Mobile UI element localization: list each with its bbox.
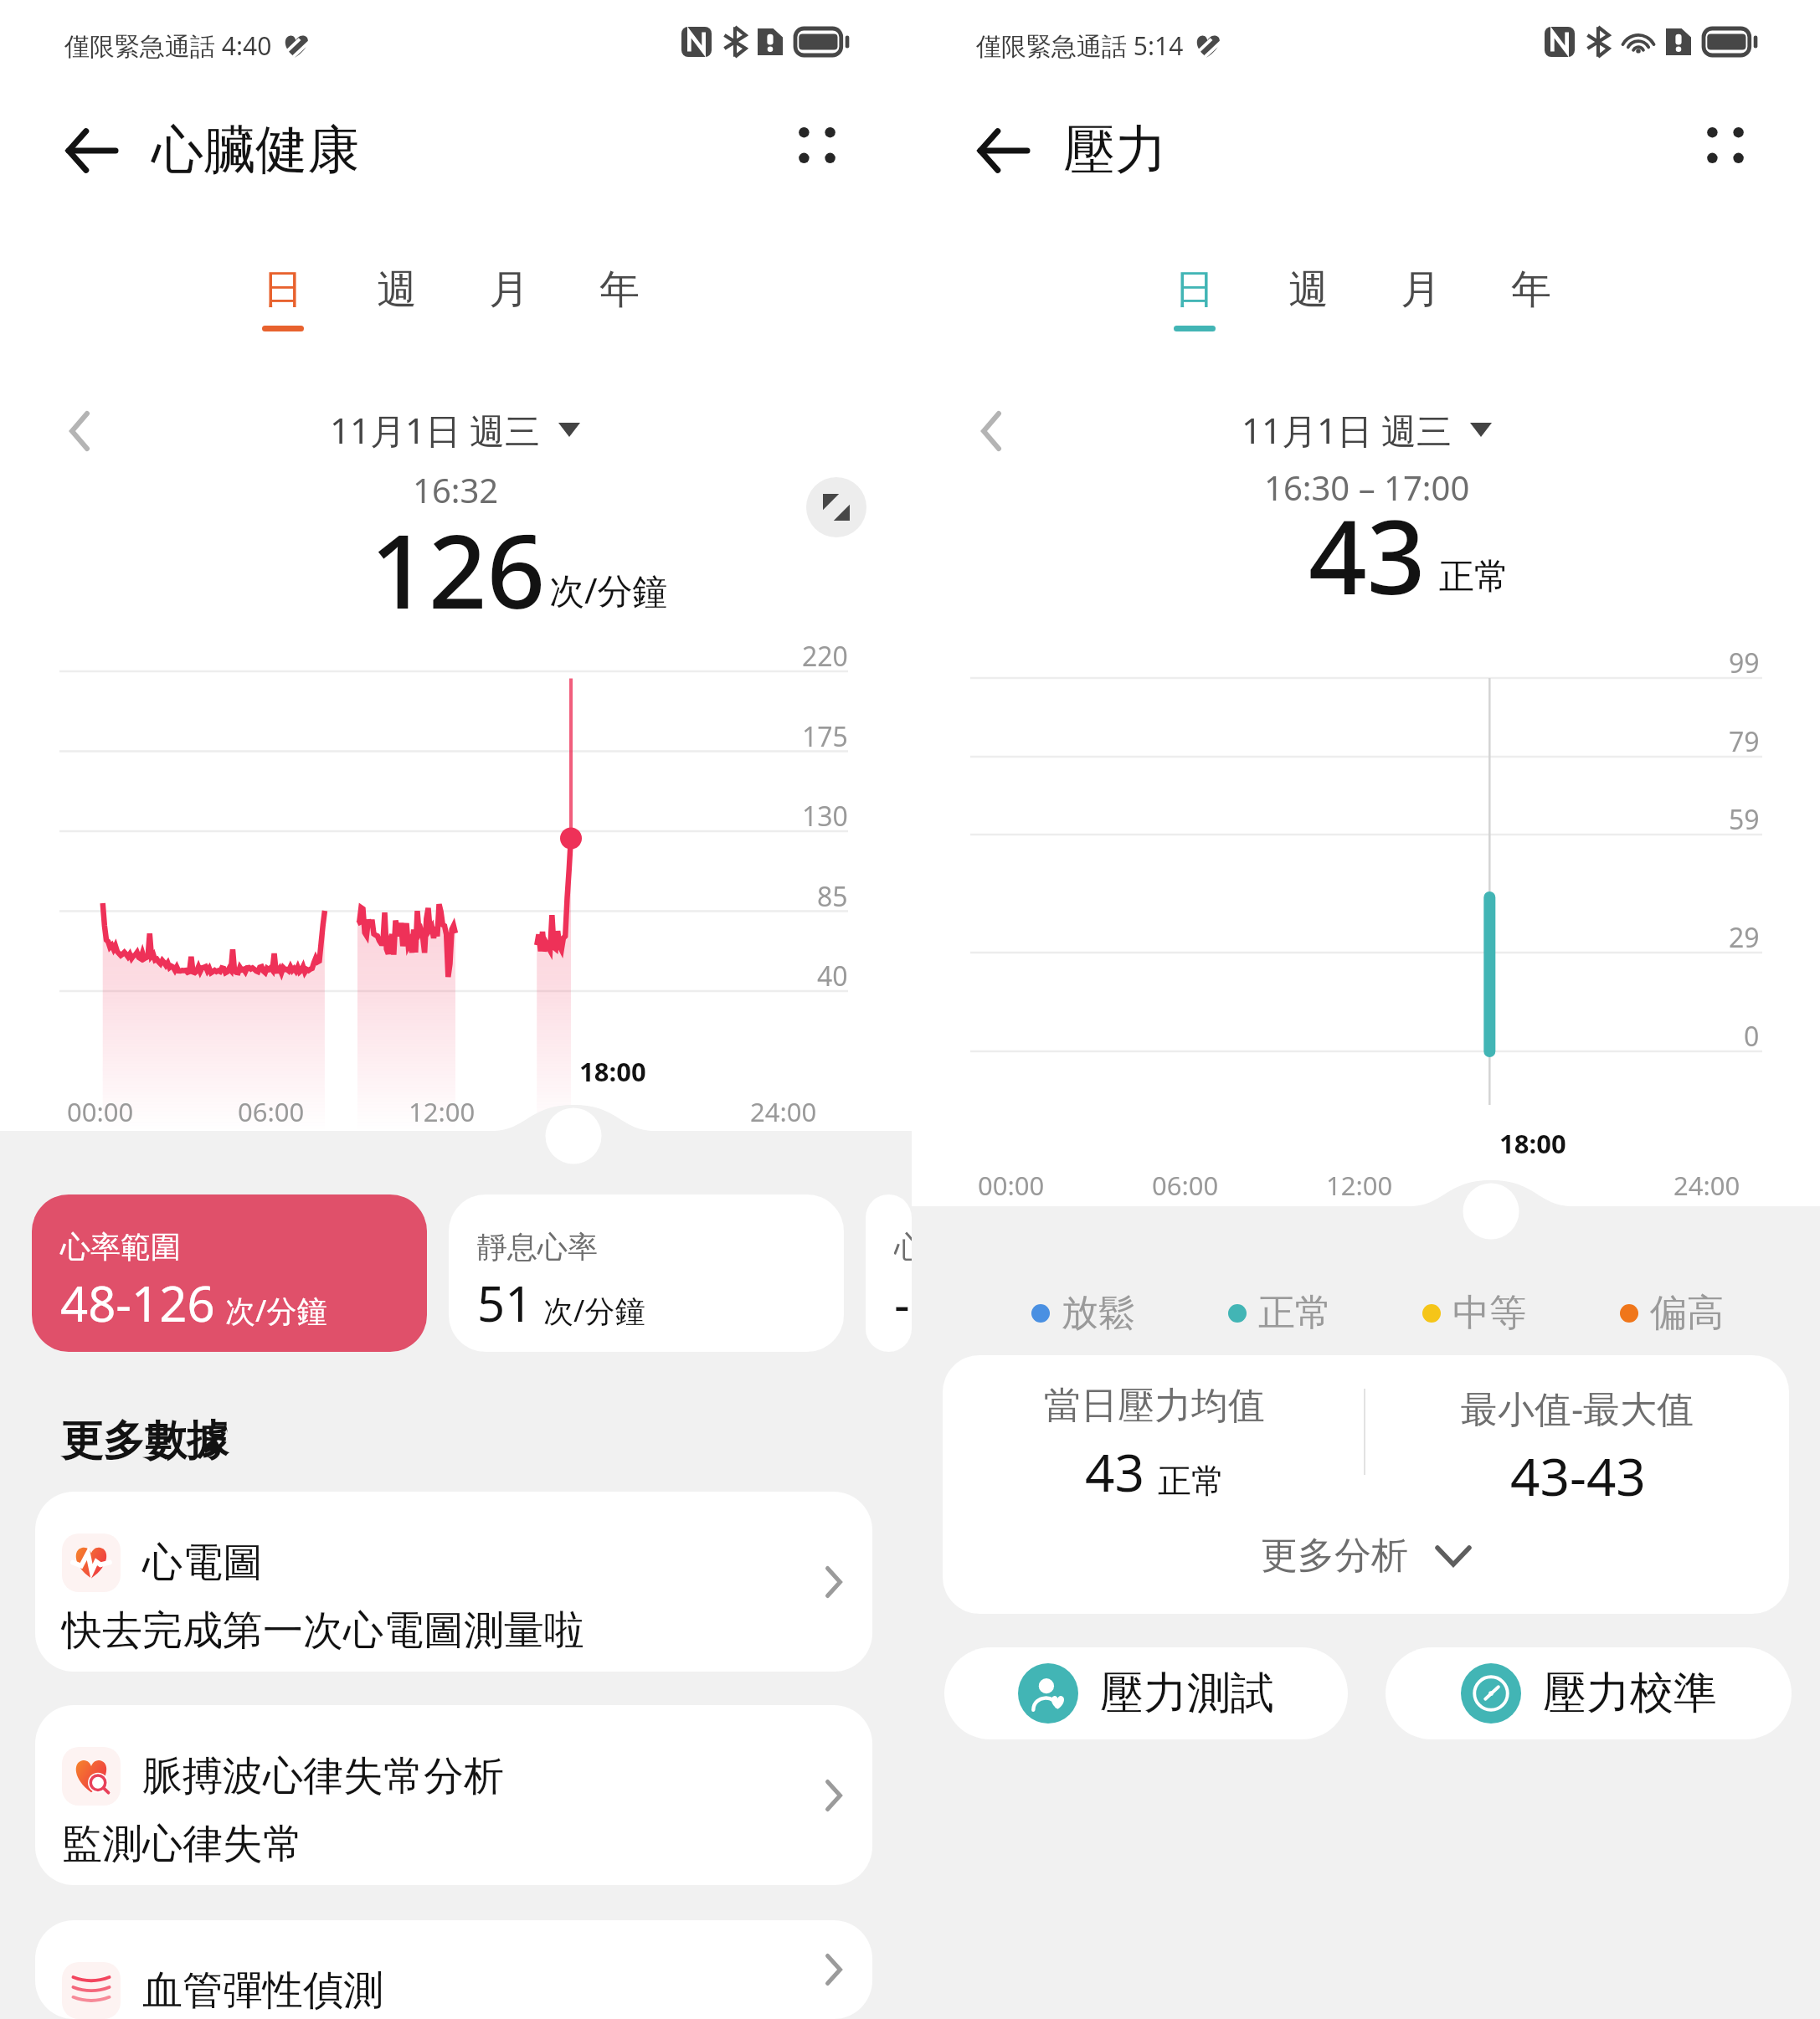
staticText: 當日壓力均值 <box>1044 1383 1265 1429</box>
staticText: 43 <box>1308 485 1426 624</box>
staticText: 快去完成第一次心電圖測量啦 <box>62 1605 584 1656</box>
button[interactable]: 日 <box>245 265 321 333</box>
staticText: 次/分鐘 <box>225 1290 327 1331</box>
staticText: 心電圖 <box>142 1538 263 1588</box>
staticText: 18:00 <box>1499 1126 1566 1161</box>
staticText: 06:00 <box>238 1094 305 1129</box>
button[interactable]: 當日壓力均值 <box>943 1355 1789 1614</box>
button[interactable]: 壓力測試 <box>944 1647 1348 1739</box>
staticText: 靜息心率 <box>477 1228 598 1266</box>
staticText: 中等 <box>1452 1290 1526 1336</box>
staticText: 24:00 <box>750 1094 817 1129</box>
button[interactable]: Back <box>973 121 1033 181</box>
staticText: 壓力校準 <box>1543 1666 1717 1721</box>
staticText: 日 <box>263 265 303 315</box>
staticText: 壓力 <box>1063 117 1167 182</box>
staticText: 40 <box>817 958 848 994</box>
staticText: 43 <box>1085 1436 1144 1507</box>
staticText: 血管彈性偵測 <box>142 1965 383 2016</box>
staticText: 更多分析 <box>1261 1533 1408 1579</box>
staticText: 11月1日 週三 <box>330 406 540 454</box>
staticText: 放鬆 <box>1062 1290 1135 1336</box>
button[interactable]: 11月1日 週三 <box>1242 406 1492 454</box>
staticText: 99 <box>1729 645 1760 681</box>
staticText: 12:00 <box>1326 1168 1393 1203</box>
button[interactable]: More options <box>1699 119 1751 171</box>
staticText: 11月1日 週三 <box>1242 406 1452 454</box>
staticText: 最小值-最大值 <box>1461 1383 1694 1433</box>
button[interactable]: More options <box>791 119 843 171</box>
button[interactable]: Previous day <box>57 408 102 454</box>
button[interactable]: Previous day <box>969 408 1014 454</box>
staticText: 正常 <box>1439 555 1509 599</box>
staticText: 220 <box>802 638 848 675</box>
staticText: 次/分鐘 <box>549 566 668 614</box>
staticText: 12:00 <box>409 1094 476 1129</box>
staticText: 51 <box>477 1270 533 1336</box>
staticText: 壓力測試 <box>1100 1666 1274 1721</box>
staticText: 更多數據 <box>61 1415 229 1467</box>
staticText: 79 <box>1729 723 1760 760</box>
staticText: 0 <box>1744 1018 1760 1055</box>
staticText: 年 <box>1511 265 1551 315</box>
button[interactable]: 日 <box>1157 265 1232 333</box>
button[interactable]: Expand chart <box>806 477 866 537</box>
button[interactable]: Back <box>61 121 121 181</box>
button[interactable]: 心電圖 <box>35 1492 872 1672</box>
staticText: 29 <box>1729 919 1760 956</box>
button[interactable]: 週 <box>1271 265 1346 333</box>
staticText: 00:00 <box>67 1094 134 1129</box>
staticText: 心臟健康 <box>152 117 359 182</box>
staticText: 59 <box>1729 801 1760 838</box>
staticText: 18:00 <box>579 1054 646 1089</box>
staticText: 16:32 <box>413 467 499 512</box>
staticText: 06:00 <box>1152 1168 1219 1203</box>
staticText: 偏高 <box>1650 1290 1724 1336</box>
staticText: 僅限緊急通話 4:40 <box>64 28 272 63</box>
button[interactable]: 靜息心率 <box>449 1194 844 1352</box>
staticText: 130 <box>802 798 848 835</box>
staticText: 僅限緊急通話 5:14 <box>976 28 1184 63</box>
staticText: 126 <box>370 500 546 639</box>
staticText: 16:30 – 17:00 <box>1264 465 1470 510</box>
staticText: 43-43 <box>1510 1441 1646 1511</box>
staticText: 00:00 <box>978 1168 1045 1203</box>
button[interactable]: 年 <box>582 265 657 333</box>
button[interactable]: 心率 <box>866 1194 912 1352</box>
button[interactable]: 壓力校準 <box>1386 1647 1792 1739</box>
staticText: 監測心律失常 <box>62 1819 303 1869</box>
staticText: 85 <box>817 878 848 915</box>
staticText: 48-126 <box>60 1270 215 1336</box>
staticText: 日 <box>1175 265 1215 315</box>
button[interactable]: 血管彈性偵測 <box>35 1920 872 2019</box>
staticText: 月 <box>489 265 529 315</box>
button[interactable]: 年 <box>1494 265 1569 333</box>
button[interactable]: 月 <box>1383 265 1458 333</box>
staticText: 週 <box>377 265 417 315</box>
button[interactable]: 週 <box>359 265 434 333</box>
button[interactable]: 11月1日 週三 <box>330 406 580 454</box>
button[interactable]: 心率範圍 <box>32 1194 427 1352</box>
staticText: 正常 <box>1158 1460 1225 1502</box>
staticText: - <box>894 1270 910 1336</box>
staticText: 週 <box>1288 265 1329 315</box>
staticText: 心率範圍 <box>60 1228 181 1266</box>
staticText: 24:00 <box>1673 1168 1740 1203</box>
staticText: 年 <box>599 265 640 315</box>
staticText: 175 <box>802 718 848 755</box>
staticText: 月 <box>1401 265 1441 315</box>
staticText: 正常 <box>1258 1290 1332 1336</box>
staticText: 脈搏波心律失常分析 <box>142 1751 504 1801</box>
button[interactable]: 脈搏波心律失常分析 <box>35 1705 872 1885</box>
staticText: 心率 <box>894 1228 912 1266</box>
staticText: 次/分鐘 <box>543 1290 645 1331</box>
button[interactable]: 月 <box>471 265 547 333</box>
